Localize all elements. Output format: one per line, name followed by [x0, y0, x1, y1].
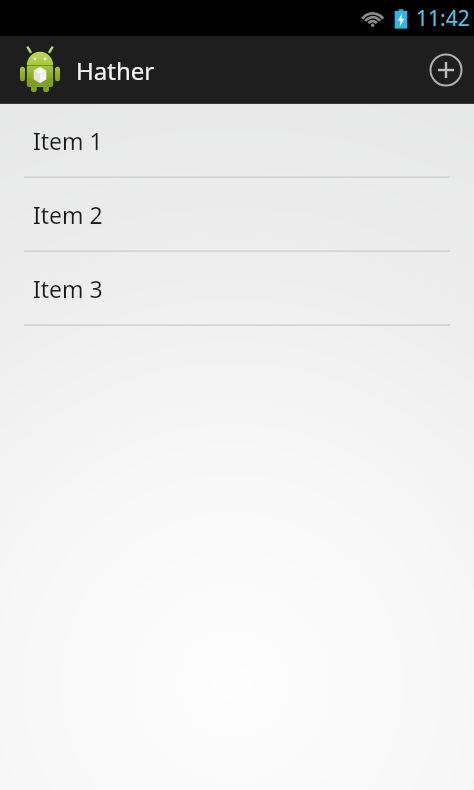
staticText: Item 3 — [33, 273, 103, 304]
button[interactable]: Item 1 — [0, 104, 474, 178]
button[interactable]: Item 3 — [0, 252, 474, 326]
staticText: Item 1 — [33, 125, 103, 156]
button[interactable]: Item 2 — [0, 178, 474, 252]
button[interactable]: Add — [418, 36, 474, 104]
staticText: Item 2 — [33, 199, 103, 230]
staticText: Hather — [76, 54, 155, 87]
staticText: 11:42 — [416, 4, 470, 33]
